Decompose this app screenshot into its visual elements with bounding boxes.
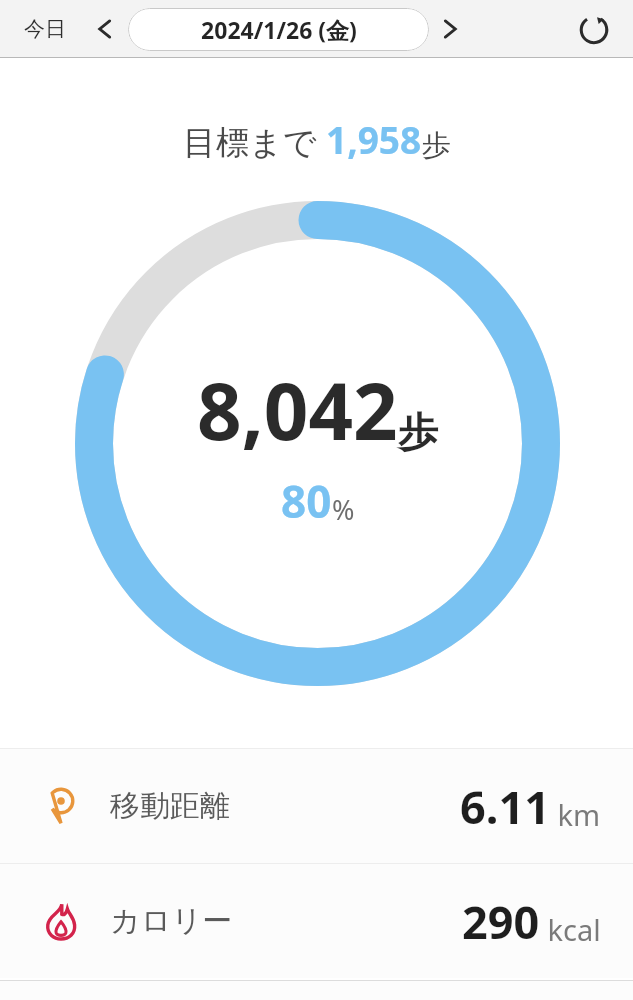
staticText: km	[550, 795, 601, 834]
staticText: 6.11	[460, 776, 550, 837]
other: Calories	[38, 898, 84, 944]
button[interactable]: Distance	[0, 749, 633, 863]
staticText: %	[332, 491, 355, 528]
button[interactable]: Previous day	[82, 7, 126, 51]
button[interactable]: Next day	[429, 7, 473, 51]
staticText: kcal	[540, 910, 601, 949]
button[interactable]: 2024/1/26 (金)	[128, 8, 429, 51]
staticText: 歩	[398, 407, 438, 457]
button[interactable]: Calories	[0, 864, 633, 978]
staticText: 歩	[422, 127, 451, 164]
staticText: カロリー	[110, 902, 233, 940]
staticText: 今日	[24, 16, 66, 42]
staticText: 1,958	[326, 114, 422, 164]
staticText: 8,042	[197, 357, 398, 463]
button[interactable]: 今日	[14, 10, 76, 48]
staticText: 2024/1/26 (金)	[201, 14, 357, 45]
staticText: 目標まで	[183, 119, 326, 164]
button[interactable]: Refresh	[571, 6, 617, 52]
staticText: 移動距離	[110, 787, 230, 825]
staticText: 290	[462, 891, 540, 952]
staticText: 80	[281, 471, 332, 531]
other: Distance	[38, 783, 84, 829]
